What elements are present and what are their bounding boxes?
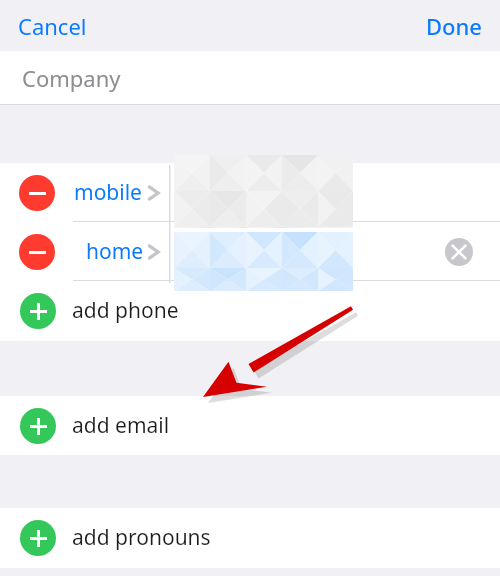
button[interactable]: Remove [0,163,500,222]
button[interactable]: Clear text [445,238,473,266]
button[interactable]: Done [414,5,494,47]
staticText: add email [72,411,170,440]
staticText: add phone [72,296,179,325]
button[interactable]: Cancel [6,5,99,47]
staticText: Cancel [18,11,87,41]
button[interactable]: add email [0,396,500,455]
button[interactable]: Company [0,51,500,105]
button[interactable]: Remove [19,234,55,270]
button[interactable]: add pronouns [0,508,500,567]
staticText: home [86,237,144,266]
staticText: Company [22,63,121,93]
button[interactable]: Remove [0,222,500,281]
button[interactable]: add phone [0,281,500,340]
staticText: mobile [74,178,142,207]
button[interactable]: Remove [19,175,55,211]
staticText: add pronouns [72,523,211,552]
staticText: Done [426,11,482,41]
